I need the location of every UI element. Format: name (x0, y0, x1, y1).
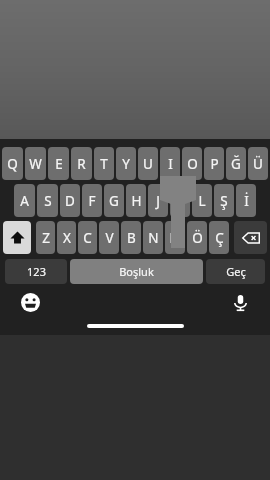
staticText: E (55, 155, 63, 173)
button[interactable]: Ğ (226, 147, 246, 180)
button[interactable]: W (25, 147, 46, 180)
button[interactable]: B (121, 221, 141, 254)
button[interactable]: Ü (248, 147, 268, 180)
button[interactable]: R (71, 147, 92, 180)
button[interactable]: T (94, 147, 114, 180)
button[interactable]: 123 (5, 259, 67, 284)
staticText: Ş (220, 192, 228, 210)
staticText: O (187, 155, 198, 173)
button[interactable]: J (148, 184, 168, 217)
button[interactable]: İ (236, 184, 256, 217)
button[interactable]: P (204, 147, 224, 180)
button[interactable]: U (138, 147, 158, 180)
staticText: I (168, 155, 173, 173)
button[interactable]: E (48, 147, 69, 180)
button[interactable]: Emoji (18, 290, 42, 314)
button[interactable]: H (126, 184, 146, 217)
staticText: W (29, 155, 42, 173)
staticText: J (156, 192, 160, 210)
button[interactable]: Shift (3, 221, 31, 254)
staticText: T (100, 155, 108, 173)
button[interactable]: Ç (209, 221, 229, 254)
staticText: X (63, 229, 71, 247)
staticText: L (198, 192, 206, 210)
staticText: Geç (226, 264, 246, 279)
staticText: V (105, 229, 114, 247)
button[interactable]: C (78, 221, 97, 254)
button[interactable]: N (143, 221, 163, 254)
button[interactable]: V (99, 221, 119, 254)
staticText: R (77, 155, 86, 173)
button[interactable]: G (104, 184, 124, 217)
button[interactable]: Boşluk (70, 259, 203, 284)
button[interactable]: X (57, 221, 76, 254)
staticText: D (65, 192, 75, 210)
button[interactable]: F (82, 184, 102, 217)
staticText: U (143, 155, 153, 173)
staticText: G (109, 192, 119, 210)
staticText: F (88, 192, 96, 210)
button[interactable]: Backspace (234, 221, 267, 254)
button[interactable]: Z (36, 221, 55, 254)
staticText: Ü (253, 155, 263, 173)
button[interactable]: A (14, 184, 35, 217)
staticText: Y (122, 155, 130, 173)
staticText: S (44, 192, 52, 210)
staticText: A (20, 192, 29, 210)
staticText: Boşluk (119, 264, 154, 279)
button[interactable]: Y (116, 147, 136, 180)
button[interactable]: Q (2, 147, 23, 180)
button[interactable]: S (37, 184, 58, 217)
staticText: Ğ (231, 155, 241, 173)
staticText: M (169, 229, 182, 247)
button[interactable]: O (182, 147, 202, 180)
button[interactable]: I (160, 147, 180, 180)
staticText: 123 (27, 264, 46, 279)
button[interactable]: M (165, 221, 185, 254)
button[interactable]: D (60, 184, 80, 217)
staticText: Ç (215, 229, 224, 247)
staticText: N (148, 229, 159, 247)
staticText: B (127, 229, 136, 247)
button[interactable]: L (192, 184, 212, 217)
button[interactable]: Voice input (228, 290, 252, 314)
staticText: P (210, 155, 219, 173)
button[interactable]: K (170, 184, 190, 217)
button[interactable]: Geç (206, 259, 265, 284)
staticText: Q (7, 155, 18, 173)
button[interactable]: Ö (187, 221, 207, 254)
staticText: İ (244, 192, 249, 210)
staticText: H (131, 192, 142, 210)
staticText: Z (42, 229, 50, 247)
staticText: C (83, 229, 92, 247)
staticText: Ö (192, 229, 203, 247)
button[interactable]: Ş (214, 184, 234, 217)
